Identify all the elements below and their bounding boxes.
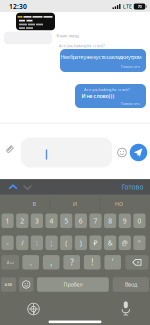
staticText: !	[91, 257, 93, 268]
staticText: ×	[137, 259, 140, 266]
staticText: Ввод	[125, 281, 137, 288]
button[interactable]	[130, 144, 147, 161]
staticText: Нее брат я уже куста закладки утром	[60, 53, 141, 61]
button[interactable]: ,	[43, 255, 59, 270]
staticText: 0	[137, 216, 141, 225]
staticText: 8 мин. назад	[56, 33, 78, 38]
staticText: Только что	[120, 101, 139, 106]
button[interactable]: 1	[1, 214, 14, 228]
button[interactable]: ;	[45, 236, 58, 250]
staticText: 70	[137, 4, 141, 9]
button[interactable]: ×	[125, 255, 148, 270]
button[interactable]: 9	[119, 214, 131, 228]
button[interactable]: ?	[63, 255, 80, 270]
button[interactable]	[19, 277, 33, 292]
staticText: ,	[50, 257, 52, 268]
staticText: 3	[35, 216, 39, 225]
button[interactable]: 0	[133, 214, 145, 228]
button[interactable]: АБВ	[1, 277, 16, 292]
button[interactable]: "	[133, 236, 145, 250]
button[interactable]: 4	[45, 214, 58, 228]
button[interactable]: 5	[60, 214, 72, 228]
staticText: 9	[123, 216, 127, 225]
button[interactable]: 6	[75, 214, 87, 228]
staticText: НО	[115, 200, 123, 208]
staticText: 5	[64, 216, 68, 225]
staticText: Are you looking for crack?	[84, 87, 130, 92]
button[interactable]: /	[16, 236, 28, 250]
staticText: #+=	[7, 260, 14, 265]
staticText: И не слово)))	[81, 92, 114, 100]
button[interactable]: Готово	[121, 183, 143, 191]
button[interactable]: 3	[31, 214, 43, 228]
button[interactable]: НО	[115, 200, 123, 208]
staticText: LTE	[123, 3, 132, 10]
staticText: ;	[51, 238, 53, 247]
staticText: В	[32, 200, 35, 208]
staticText: Готово	[121, 183, 143, 191]
staticText: ₽	[93, 238, 97, 247]
button[interactable]: В	[32, 200, 35, 208]
button[interactable]	[28, 303, 39, 315]
staticText: &	[108, 238, 113, 247]
button[interactable]: '	[104, 255, 121, 270]
staticText: .	[30, 257, 32, 268]
staticText: )	[80, 238, 82, 247]
staticText: (	[65, 238, 67, 247]
staticText: И	[73, 200, 77, 208]
button[interactable]: И	[73, 200, 77, 208]
staticText: @	[122, 238, 128, 247]
staticText: Только что	[120, 64, 139, 69]
button[interactable]	[8, 184, 17, 190]
staticText: "	[138, 238, 141, 247]
button[interactable]: 8	[104, 214, 116, 228]
button[interactable]: .	[22, 255, 39, 270]
staticText: АБВ	[5, 282, 13, 287]
button[interactable]: 7	[89, 214, 102, 228]
button[interactable]: ₽	[89, 236, 102, 250]
button[interactable]	[4, 144, 14, 154]
button[interactable]: )	[75, 236, 87, 250]
staticText: '	[112, 257, 114, 268]
button[interactable]: -	[1, 236, 14, 250]
staticText: Пробел	[63, 281, 82, 288]
button[interactable]: :	[31, 236, 43, 250]
staticText: Are you looking for crack?	[59, 43, 105, 48]
button[interactable]	[21, 137, 112, 167]
staticText: 4	[50, 216, 54, 225]
button[interactable]: Ввод	[113, 277, 149, 292]
button[interactable]: Пробел	[37, 277, 109, 292]
staticText: 2	[20, 216, 24, 225]
staticText: 7	[93, 216, 97, 225]
button[interactable]	[118, 148, 126, 157]
staticText: -	[7, 238, 9, 247]
staticText: 12:30	[9, 2, 27, 11]
staticText: 6	[79, 216, 83, 225]
staticText: /	[21, 238, 23, 247]
button[interactable]	[121, 303, 130, 313]
button[interactable]	[23, 185, 32, 190]
button[interactable]: !	[84, 255, 100, 270]
staticText: 8	[108, 216, 112, 225]
staticText: ?	[70, 257, 73, 268]
button[interactable]: (	[60, 236, 72, 250]
button[interactable]: 2	[16, 214, 28, 228]
staticText: 1	[6, 216, 10, 225]
button[interactable]: &	[104, 236, 116, 250]
staticText: :	[36, 238, 38, 247]
button[interactable]: #+=	[1, 255, 19, 270]
button[interactable]: @	[119, 236, 131, 250]
